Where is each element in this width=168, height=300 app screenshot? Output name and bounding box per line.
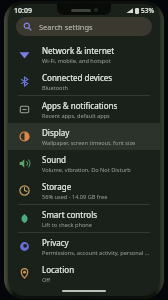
staticText: Display: [42, 127, 70, 138]
staticText: Permissions, account activity, personal …: [42, 249, 152, 257]
button[interactable]: Network & internet: [8, 41, 160, 68]
staticText: Wallpaper, screen timeout, font size: [42, 139, 136, 147]
button[interactable]: Storage: [8, 177, 160, 204]
staticText: 56% used - 14.09 GB free: [42, 193, 108, 201]
staticText: Apps & notifications: [42, 100, 118, 111]
button[interactable]: Location: [8, 260, 160, 287]
button[interactable]: Privacy: [8, 233, 160, 260]
staticText: 10:09: [14, 6, 32, 16]
button[interactable]: Apps & notifications: [8, 96, 160, 123]
staticText: Recent apps, default apps: [42, 112, 110, 120]
button[interactable]: Connected devices: [8, 68, 160, 95]
staticText: Sound: [42, 154, 67, 165]
staticText: Privacy: [42, 237, 69, 248]
staticText: Search settings: [39, 22, 93, 32]
staticText: Lift to check phone: [42, 221, 92, 229]
staticText: Smart controls: [42, 209, 98, 220]
staticText: Volume, vibration, Do Not Disturb: [42, 166, 131, 174]
button[interactable]: Sound: [8, 150, 160, 177]
button[interactable]: Search: [16, 17, 152, 36]
staticText: Location: [42, 264, 75, 275]
button[interactable]: Display: [8, 123, 160, 150]
staticText: Connected devices: [42, 72, 113, 83]
staticText: Off: [42, 276, 51, 284]
button[interactable]: Smart controls: [8, 205, 160, 232]
staticText: Bluetooth: [42, 84, 68, 92]
staticText: Network & internet: [42, 45, 115, 56]
other: Search: [23, 22, 32, 31]
staticText: Storage: [42, 181, 72, 192]
staticText: Wi-Fi, mobile, and hotspot: [42, 57, 111, 65]
staticText: 53%: [141, 6, 154, 15]
